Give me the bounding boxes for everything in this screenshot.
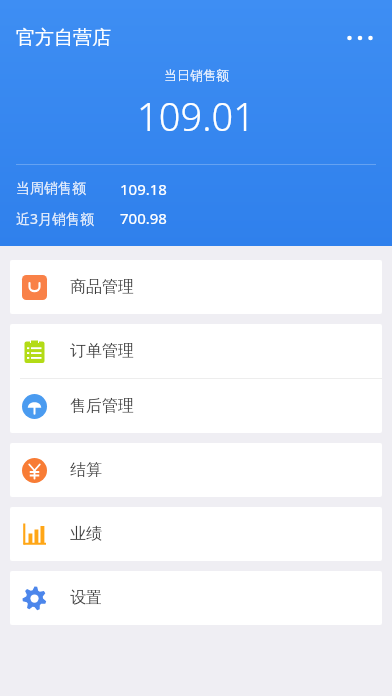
staticText: 当日销售额 (164, 67, 229, 83)
staticText: 109.01 (137, 90, 255, 142)
staticText: 业绩 (70, 524, 102, 544)
staticText: 设置 (70, 588, 102, 608)
button[interactable]: 设置 (10, 571, 382, 625)
staticText: 商品管理 (70, 277, 134, 297)
staticText: 109.18 (120, 179, 167, 199)
button[interactable]: 商品管理 (10, 260, 382, 314)
staticText: 近3月销售额 (16, 209, 95, 228)
staticText: 结算 (70, 460, 102, 480)
staticText: 700.98 (120, 208, 167, 228)
staticText: 订单管理 (70, 341, 134, 361)
staticText: 当周销售额 (16, 180, 86, 198)
button[interactable]: 业绩 (10, 507, 382, 561)
button[interactable]: 订单管理 (10, 324, 382, 378)
button[interactable]: 售后管理 (10, 379, 382, 433)
button[interactable]: More options (336, 20, 384, 56)
staticText: 售后管理 (70, 396, 134, 416)
button[interactable]: 结算 (10, 443, 382, 497)
button[interactable]: 官方自营店 (16, 26, 111, 50)
